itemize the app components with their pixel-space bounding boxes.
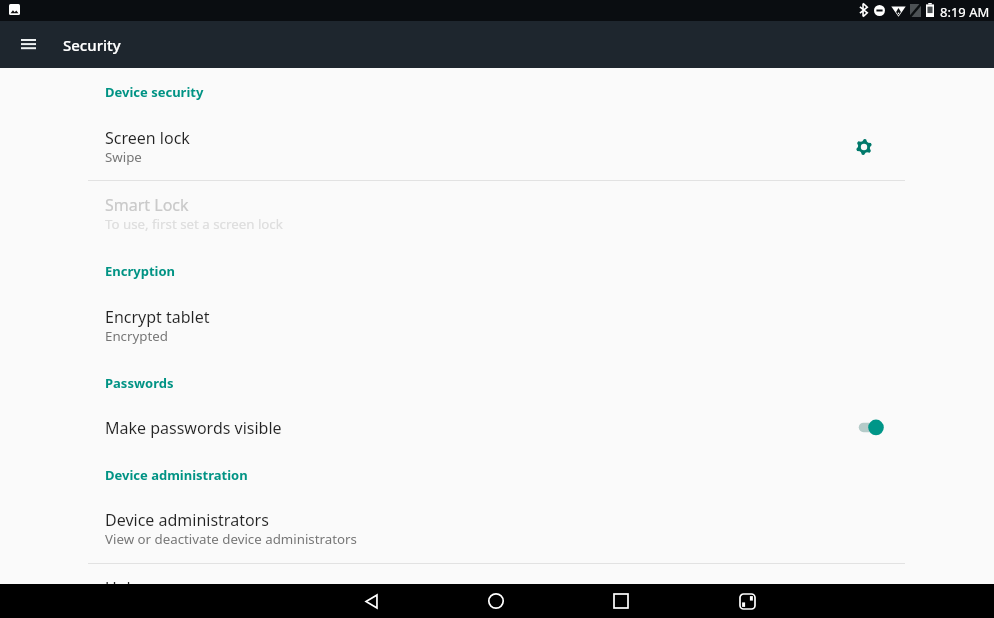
staticText: Device administrators (105, 509, 269, 531)
button[interactable]: Screenshot (730, 584, 764, 618)
button[interactable]: Make passwords visible (0, 403, 994, 449)
button[interactable]: Smart Lock (0, 180, 994, 242)
staticText: Passwords (105, 374, 174, 392)
button[interactable]: Back (354, 584, 388, 618)
button[interactable]: Open navigation drawer (7, 26, 49, 63)
button[interactable]: Make passwords visible toggle (852, 409, 892, 446)
button[interactable]: Screen lock (0, 113, 994, 175)
staticText: Swipe (105, 148, 142, 166)
staticText: Allow installation of apps from unknown … (105, 598, 408, 616)
staticText: 8:19 AM (940, 3, 990, 21)
staticText: Unknown sources (105, 577, 239, 599)
button[interactable]: Device administrators (0, 495, 994, 557)
staticText: Smart Lock (105, 194, 189, 216)
staticText: Device administration (105, 466, 248, 484)
button[interactable]: Encrypt tablet (0, 292, 994, 354)
staticText: Make passwords visible (105, 417, 282, 439)
staticText: Encrypt tablet (105, 306, 210, 328)
staticText: Encrypted (105, 327, 168, 345)
staticText: View or deactivate device administrators (105, 530, 357, 548)
button[interactable]: Home (479, 584, 513, 618)
button[interactable]: Recent apps (604, 584, 638, 618)
button[interactable]: Unknown sources (0, 563, 994, 618)
staticText: To use, first set a screen lock (105, 215, 283, 233)
staticText: Screen lock (105, 127, 190, 149)
staticText: Device security (105, 83, 204, 101)
staticText: Security (63, 35, 121, 55)
staticText: Encryption (105, 262, 175, 280)
button[interactable]: Screen lock settings (845, 128, 882, 165)
